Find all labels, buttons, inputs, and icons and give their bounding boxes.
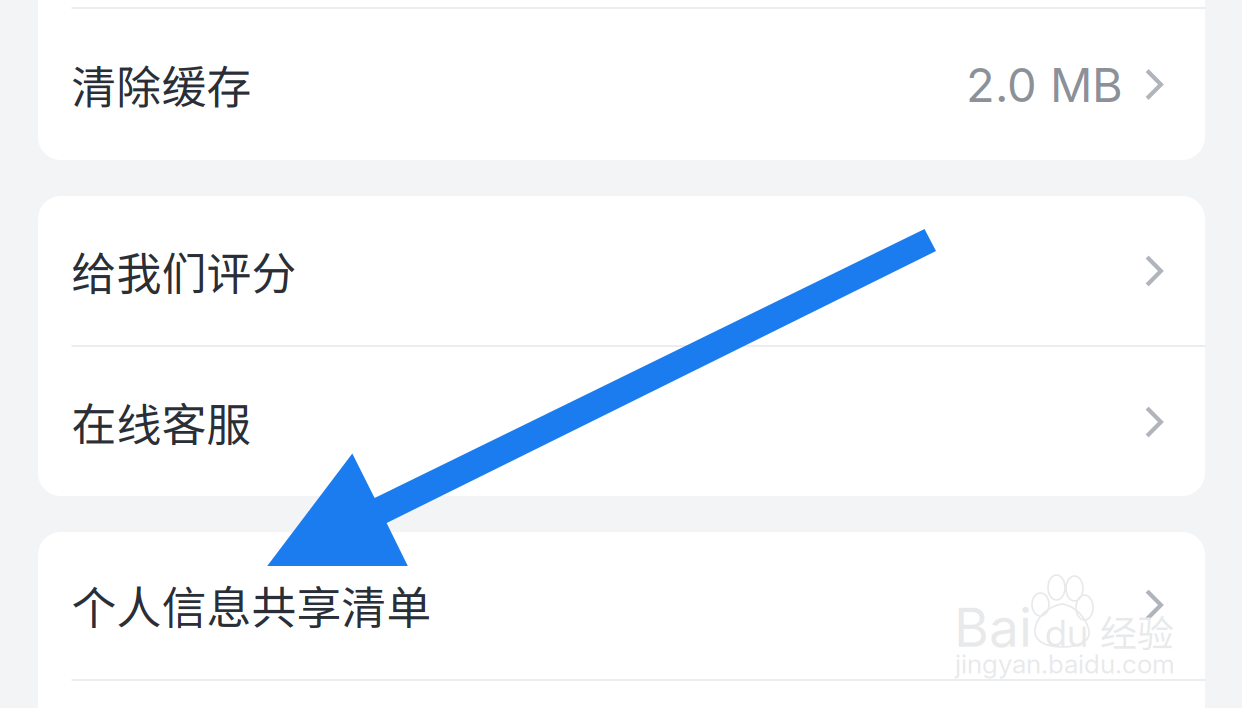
- staticText: 给我们评分: [71, 238, 296, 303]
- staticText: 个人信息共享清单: [71, 572, 431, 637]
- staticText: 经验: [1100, 604, 1174, 658]
- staticText: 清除缓存: [71, 52, 251, 116]
- staticText: 在线客服: [71, 389, 251, 454]
- staticText: Bai: [954, 595, 1032, 659]
- staticText: 2.0 MB: [966, 57, 1123, 113]
- button[interactable]: 个人信息共享清单: [38, 532, 1205, 679]
- button[interactable]: 给我们评分: [38, 196, 1205, 345]
- button[interactable]: 在线客服: [38, 347, 1205, 496]
- button[interactable]: 清除缓存: [38, 9, 1205, 160]
- staticText: du: [1045, 610, 1088, 656]
- staticText: jingyan.baidu.com: [955, 648, 1175, 680]
